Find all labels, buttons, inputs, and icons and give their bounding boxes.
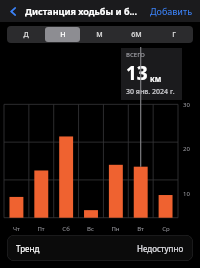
button[interactable]: М: [82, 27, 117, 42]
button[interactable]: Н: [45, 27, 80, 42]
staticText: Пт: [37, 225, 45, 233]
button[interactable]: Тренд: [7, 235, 193, 261]
button[interactable]: Добавить: [148, 5, 195, 17]
staticText: Вт: [137, 225, 144, 233]
staticText: Ср: [162, 225, 170, 233]
staticText: Тренд: [16, 243, 40, 254]
staticText: Д: [23, 30, 29, 40]
staticText: Дистанция ходьбы и б...: [25, 5, 138, 17]
staticText: Недоступно: [137, 243, 184, 254]
staticText: км: [150, 73, 162, 84]
staticText: 20: [183, 145, 190, 153]
button[interactable]: Г: [156, 27, 191, 42]
staticText: М: [96, 30, 103, 40]
staticText: 30: [183, 101, 190, 109]
staticText: Вс: [87, 225, 94, 233]
staticText: Сб: [62, 225, 70, 233]
staticText: 10: [183, 190, 190, 198]
staticText: 13: [126, 60, 148, 86]
staticText: 6М: [131, 30, 142, 40]
staticText: Г: [172, 30, 176, 40]
staticText: 30 янв. 2024 г.: [126, 87, 175, 97]
staticText: Чт: [13, 225, 20, 233]
staticText: Н: [60, 30, 66, 40]
button[interactable]: Назад: [5, 3, 21, 19]
staticText: ВСЕГО: [126, 51, 145, 59]
button[interactable]: Д: [9, 27, 43, 42]
staticText: Добавить: [150, 5, 193, 17]
button[interactable]: 6М: [119, 27, 154, 42]
staticText: Пн: [111, 225, 120, 233]
